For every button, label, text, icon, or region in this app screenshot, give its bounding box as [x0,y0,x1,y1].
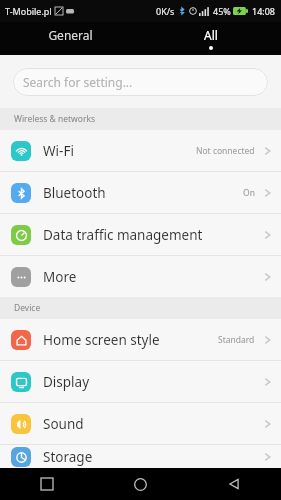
staticText: 45% [213,5,231,17]
button[interactable]: Bluetooth [0,172,281,213]
staticText: Standard [218,334,255,346]
staticText: Storage [43,448,263,466]
staticText: Sound [43,415,263,433]
staticText: Wi-Fi [43,142,196,160]
button[interactable]: Storage [0,445,281,468]
button[interactable]: Display [0,361,281,402]
staticText: Device [14,302,41,314]
staticText: 14:08 [252,5,276,17]
staticText: Search for setting... [23,74,133,90]
button[interactable]: More [0,256,281,297]
button[interactable]: All [140,22,281,55]
staticText: All [204,27,218,43]
button[interactable]: Search for setting... [13,68,268,96]
staticText: 0K/s [156,5,175,17]
staticText: On [243,187,255,199]
staticText: Bluetooth [43,184,243,202]
staticText: Display [43,373,263,391]
button[interactable]: Recent apps [0,468,93,500]
staticText: General [48,27,93,43]
button[interactable]: Home screen style [0,319,281,360]
button[interactable]: Data traffic management [0,214,281,255]
staticText: Data traffic management [43,226,263,244]
staticText: Home screen style [43,331,218,349]
staticText: More [43,268,263,286]
button[interactable]: Sound [0,403,281,444]
staticText: T-Mobile.pl [5,5,52,17]
staticText: Wireless & networks [14,113,96,125]
button[interactable]: Wi-Fi [0,130,281,171]
button[interactable]: Home [93,468,187,500]
button[interactable]: Back [187,468,281,500]
staticText: Not connected [196,145,255,157]
button[interactable]: General [0,22,140,55]
